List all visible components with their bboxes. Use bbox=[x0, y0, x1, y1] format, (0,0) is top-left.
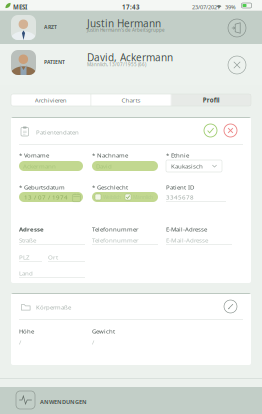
staticText: * Nachname bbox=[92, 151, 128, 159]
button[interactable]: Speichern bbox=[204, 124, 217, 137]
staticText: Patientendaten bbox=[36, 128, 79, 136]
staticText: * Vorname bbox=[19, 151, 49, 159]
staticText: 23/07/2021 bbox=[192, 3, 220, 11]
button[interactable]: Bearbeiten bbox=[224, 300, 237, 313]
staticText: ARZT bbox=[44, 23, 57, 30]
staticText: Weiblich bbox=[103, 194, 121, 200]
staticText: / bbox=[19, 338, 21, 346]
staticText: Archivieren bbox=[35, 96, 67, 104]
staticText: * Ethnie bbox=[166, 151, 189, 159]
staticText: Justin Hermann bbox=[87, 16, 161, 30]
staticText: David, Ackermann bbox=[87, 50, 173, 64]
staticText: E-Mail-Adresse bbox=[166, 225, 207, 233]
button[interactable]: Patient schliessen bbox=[228, 56, 246, 74]
staticText: Telefonnummer bbox=[92, 236, 139, 244]
staticText: 39% bbox=[225, 3, 236, 11]
button[interactable]: Abmelden bbox=[228, 19, 246, 37]
staticText: Justin Hermann's de Arbeitsgruppe bbox=[87, 27, 165, 33]
staticText: / bbox=[92, 338, 94, 346]
staticText: Adresse bbox=[19, 225, 44, 233]
staticText: Charts bbox=[121, 96, 140, 104]
staticText: Patient ID bbox=[166, 183, 194, 191]
button[interactable]: Archivieren bbox=[11, 94, 91, 106]
staticText: PLZ bbox=[19, 253, 30, 261]
staticText: Telefonnummer bbox=[92, 225, 138, 233]
staticText: PATIENT bbox=[44, 58, 65, 65]
button[interactable]: ANWENDUNGEN bbox=[0, 387, 100, 414]
staticText: David bbox=[96, 162, 112, 170]
staticText: Kaukasisch bbox=[171, 162, 203, 170]
staticText: Männlich bbox=[133, 194, 153, 200]
staticText: ANWENDUNGEN bbox=[40, 398, 87, 406]
staticText: Ort bbox=[48, 253, 58, 261]
button[interactable]: Verwerfen bbox=[224, 124, 237, 137]
staticText: Land bbox=[19, 269, 33, 277]
staticText: Straße bbox=[19, 236, 36, 244]
staticText: * Geburtsdatum bbox=[19, 183, 65, 191]
staticText: Körpermaße bbox=[36, 303, 71, 311]
staticText: Gewicht bbox=[92, 327, 115, 335]
staticText: Männlich, 13/07/1955 (66) bbox=[87, 61, 146, 68]
button[interactable]: Charts bbox=[91, 94, 171, 106]
staticText: 13 / 07 / 1974 bbox=[24, 193, 68, 201]
staticText: MESI bbox=[13, 3, 27, 11]
staticText: * Geschlecht bbox=[92, 183, 128, 191]
button[interactable]: Profil bbox=[171, 94, 251, 106]
staticText: 17:43 bbox=[122, 3, 140, 11]
staticText: E-Mail-Adresse bbox=[166, 236, 208, 244]
staticText: Profil bbox=[203, 96, 220, 104]
staticText: Ackermann bbox=[23, 162, 56, 170]
staticText: Höhe bbox=[19, 327, 34, 335]
staticText: 3345678 bbox=[166, 193, 194, 201]
